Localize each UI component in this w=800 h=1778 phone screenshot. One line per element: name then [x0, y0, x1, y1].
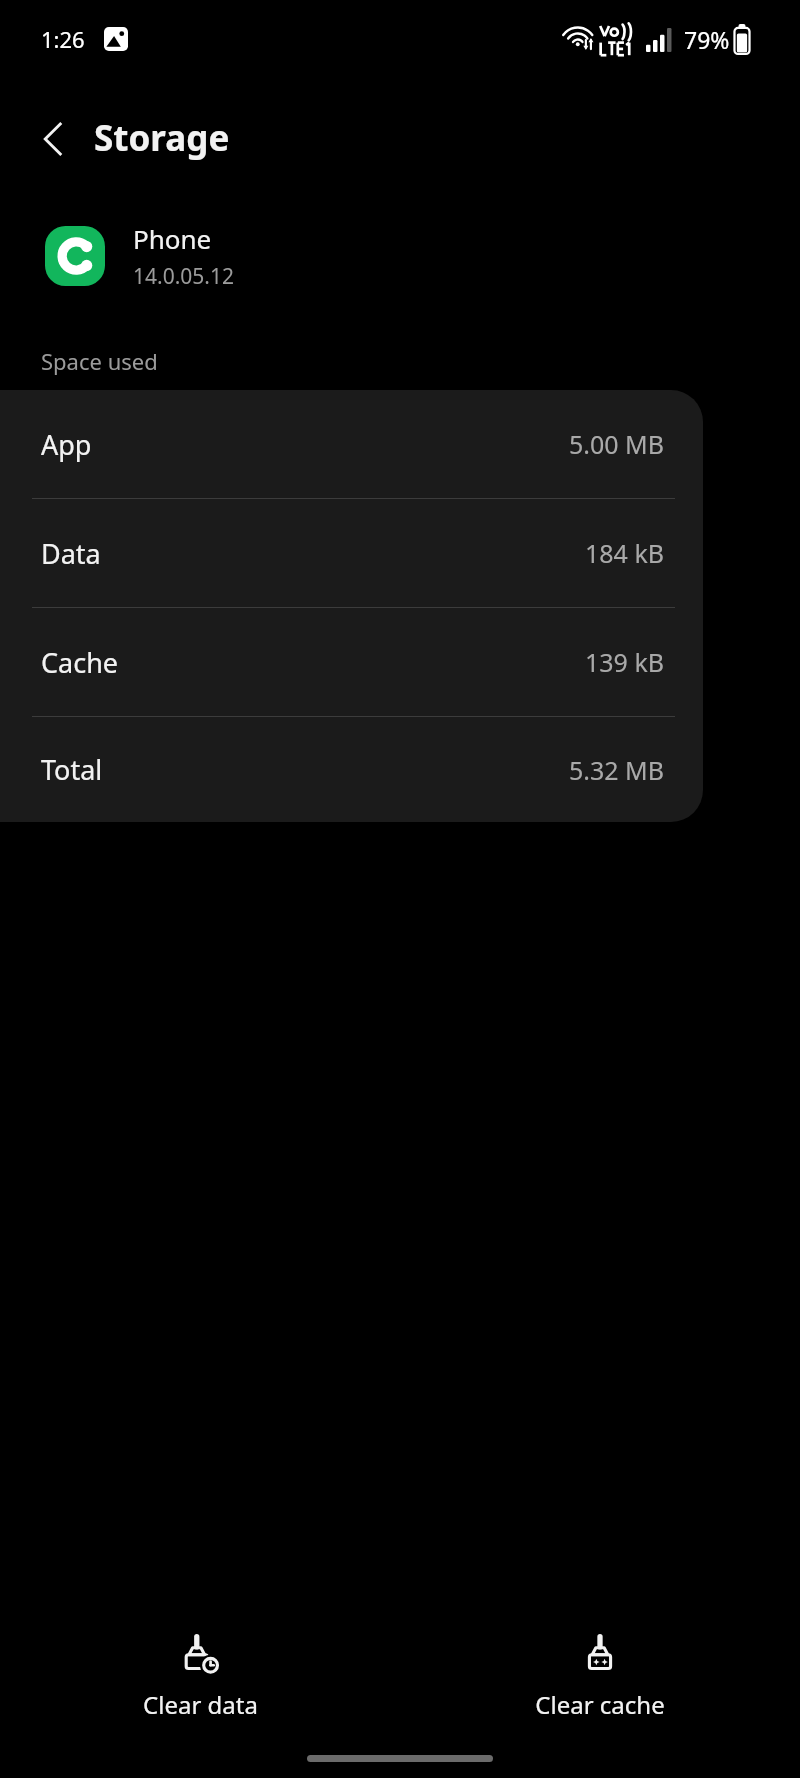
staticText: 184 kB — [585, 536, 665, 570]
button[interactable]: Back — [20, 106, 86, 172]
staticText: 5.32 MB — [569, 753, 665, 787]
staticText: 79% — [684, 24, 730, 55]
staticText: 5.00 MB — [569, 427, 665, 461]
button[interactable]: Data — [0, 499, 703, 607]
staticText: Storage — [94, 114, 230, 162]
staticText: Clear cache — [535, 1688, 665, 1721]
staticText: Space used — [41, 346, 158, 376]
staticText: Total — [41, 751, 103, 788]
staticText: Clear data — [143, 1688, 258, 1721]
staticText: App — [41, 426, 92, 463]
button[interactable]: Clear data — [0, 1628, 400, 1727]
button[interactable]: Clear cache — [400, 1628, 800, 1727]
button[interactable]: Total — [0, 717, 703, 822]
button[interactable]: Cache — [0, 608, 703, 716]
staticText: Cache — [41, 644, 119, 681]
staticText: 1:26 — [41, 24, 85, 54]
staticText: 139 kB — [585, 645, 665, 679]
button[interactable]: App — [0, 390, 703, 498]
staticText: Phone — [133, 221, 212, 256]
staticText: 14.0.05.12 — [133, 262, 234, 291]
staticText: Data — [41, 535, 101, 572]
